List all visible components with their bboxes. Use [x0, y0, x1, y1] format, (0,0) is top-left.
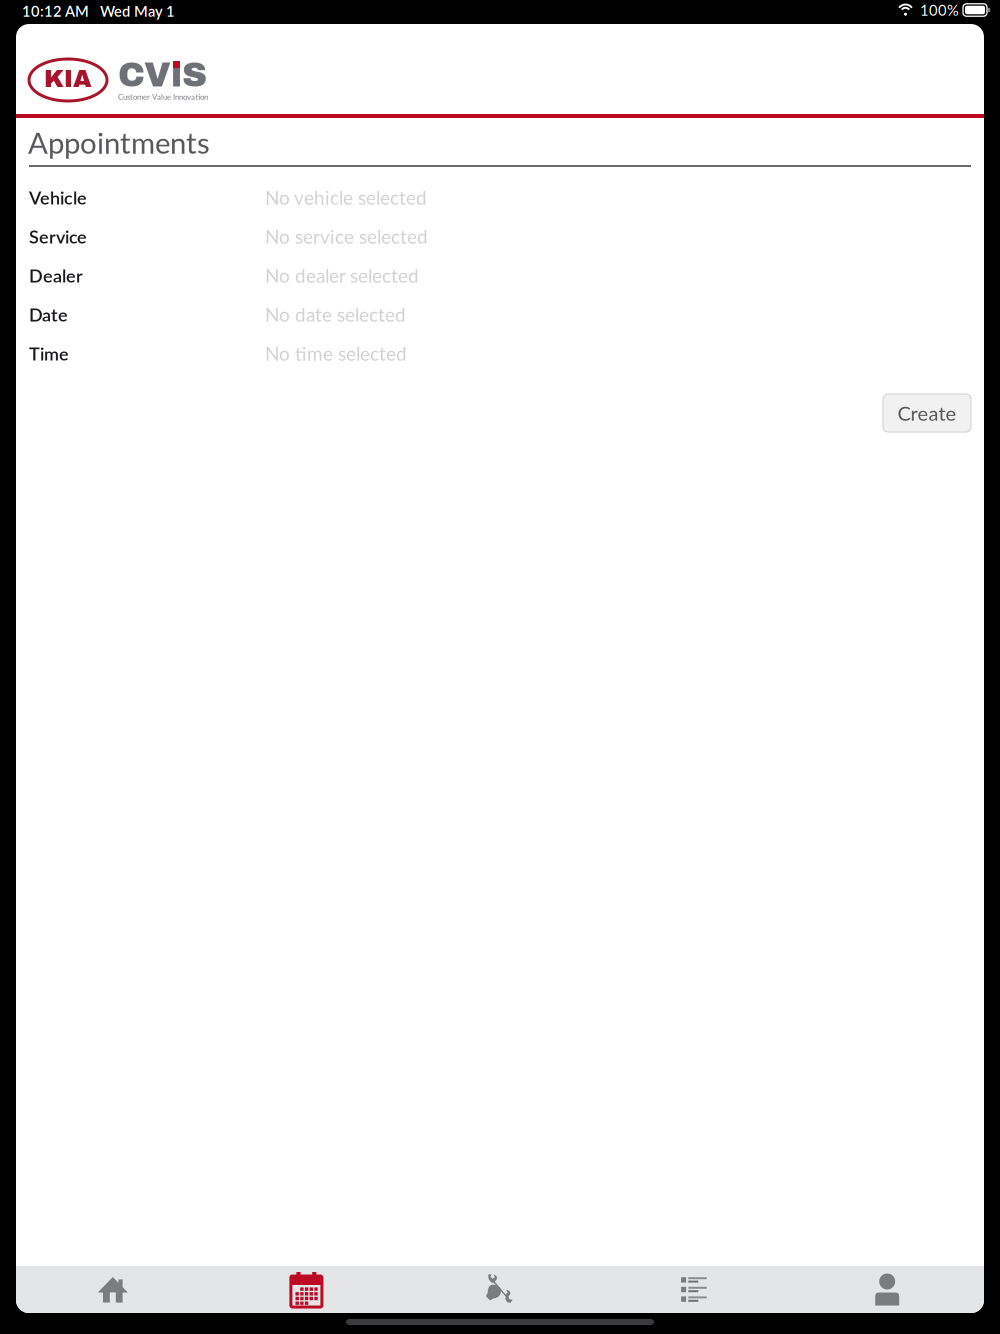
staticText: Date — [29, 304, 68, 325]
staticText: 100% — [920, 1, 959, 19]
staticText: 10:12 AM — [22, 2, 89, 20]
staticText: Create — [897, 401, 956, 425]
staticText: Wed May 1 — [100, 2, 175, 20]
staticText: KIA — [44, 66, 92, 92]
button[interactable]: History — [597, 1266, 790, 1313]
staticText: Customer Value Innovation — [118, 92, 208, 101]
staticText: No time selected — [265, 342, 407, 365]
button[interactable]: Create — [883, 394, 971, 432]
staticText: CViS — [118, 56, 207, 94]
button[interactable]: Appointments — [210, 1266, 403, 1313]
staticText: No service selected — [265, 225, 428, 248]
staticText: Appointments — [28, 125, 210, 160]
button[interactable]: Home — [16, 1266, 210, 1313]
staticText: Vehicle — [29, 187, 87, 208]
staticText: No vehicle selected — [265, 186, 427, 209]
button[interactable]: Service — [403, 1266, 597, 1313]
staticText: Time — [29, 343, 69, 364]
staticText: No dealer selected — [265, 264, 419, 287]
staticText: Service — [29, 226, 87, 247]
staticText: Dealer — [29, 265, 83, 286]
button[interactable]: Profile — [790, 1266, 984, 1313]
staticText: No date selected — [265, 303, 406, 326]
